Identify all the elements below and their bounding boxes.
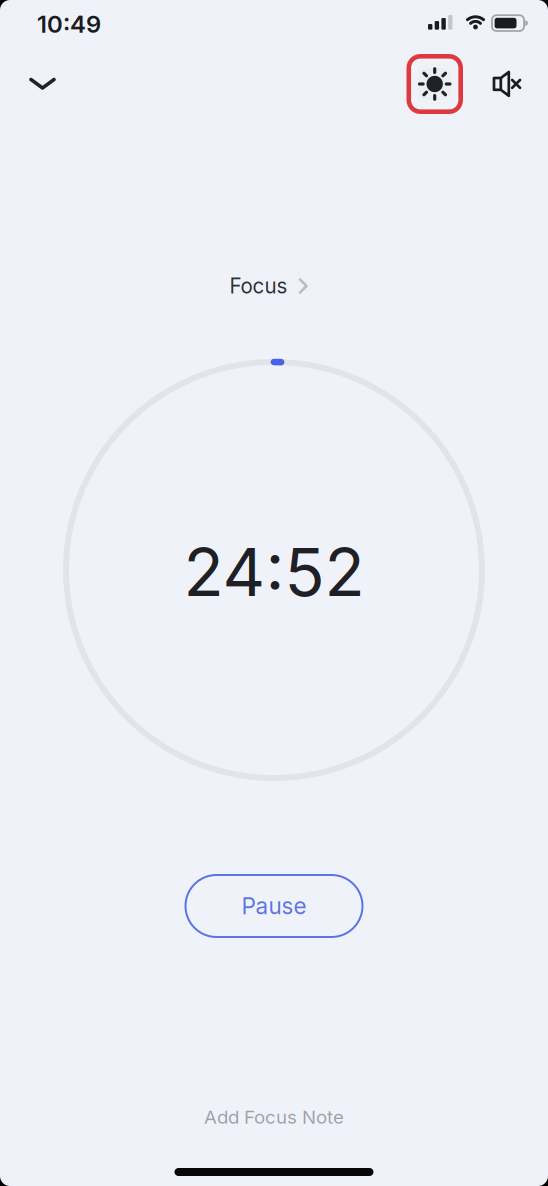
button[interactable]: Focus bbox=[234, 273, 313, 298]
button[interactable]: Appearance bbox=[406, 54, 463, 114]
button[interactable]: Collapse bbox=[29, 75, 56, 92]
staticText: Add Focus Note bbox=[204, 1106, 344, 1128]
button[interactable]: Pause bbox=[184, 874, 363, 938]
staticText: Pause bbox=[241, 892, 306, 920]
staticText: 10:49 bbox=[37, 9, 101, 38]
staticText: 24:52 bbox=[183, 532, 364, 612]
button[interactable]: Add Focus Note bbox=[204, 1102, 344, 1132]
staticText: Focus bbox=[229, 273, 287, 298]
button[interactable]: Mute bbox=[490, 70, 526, 98]
